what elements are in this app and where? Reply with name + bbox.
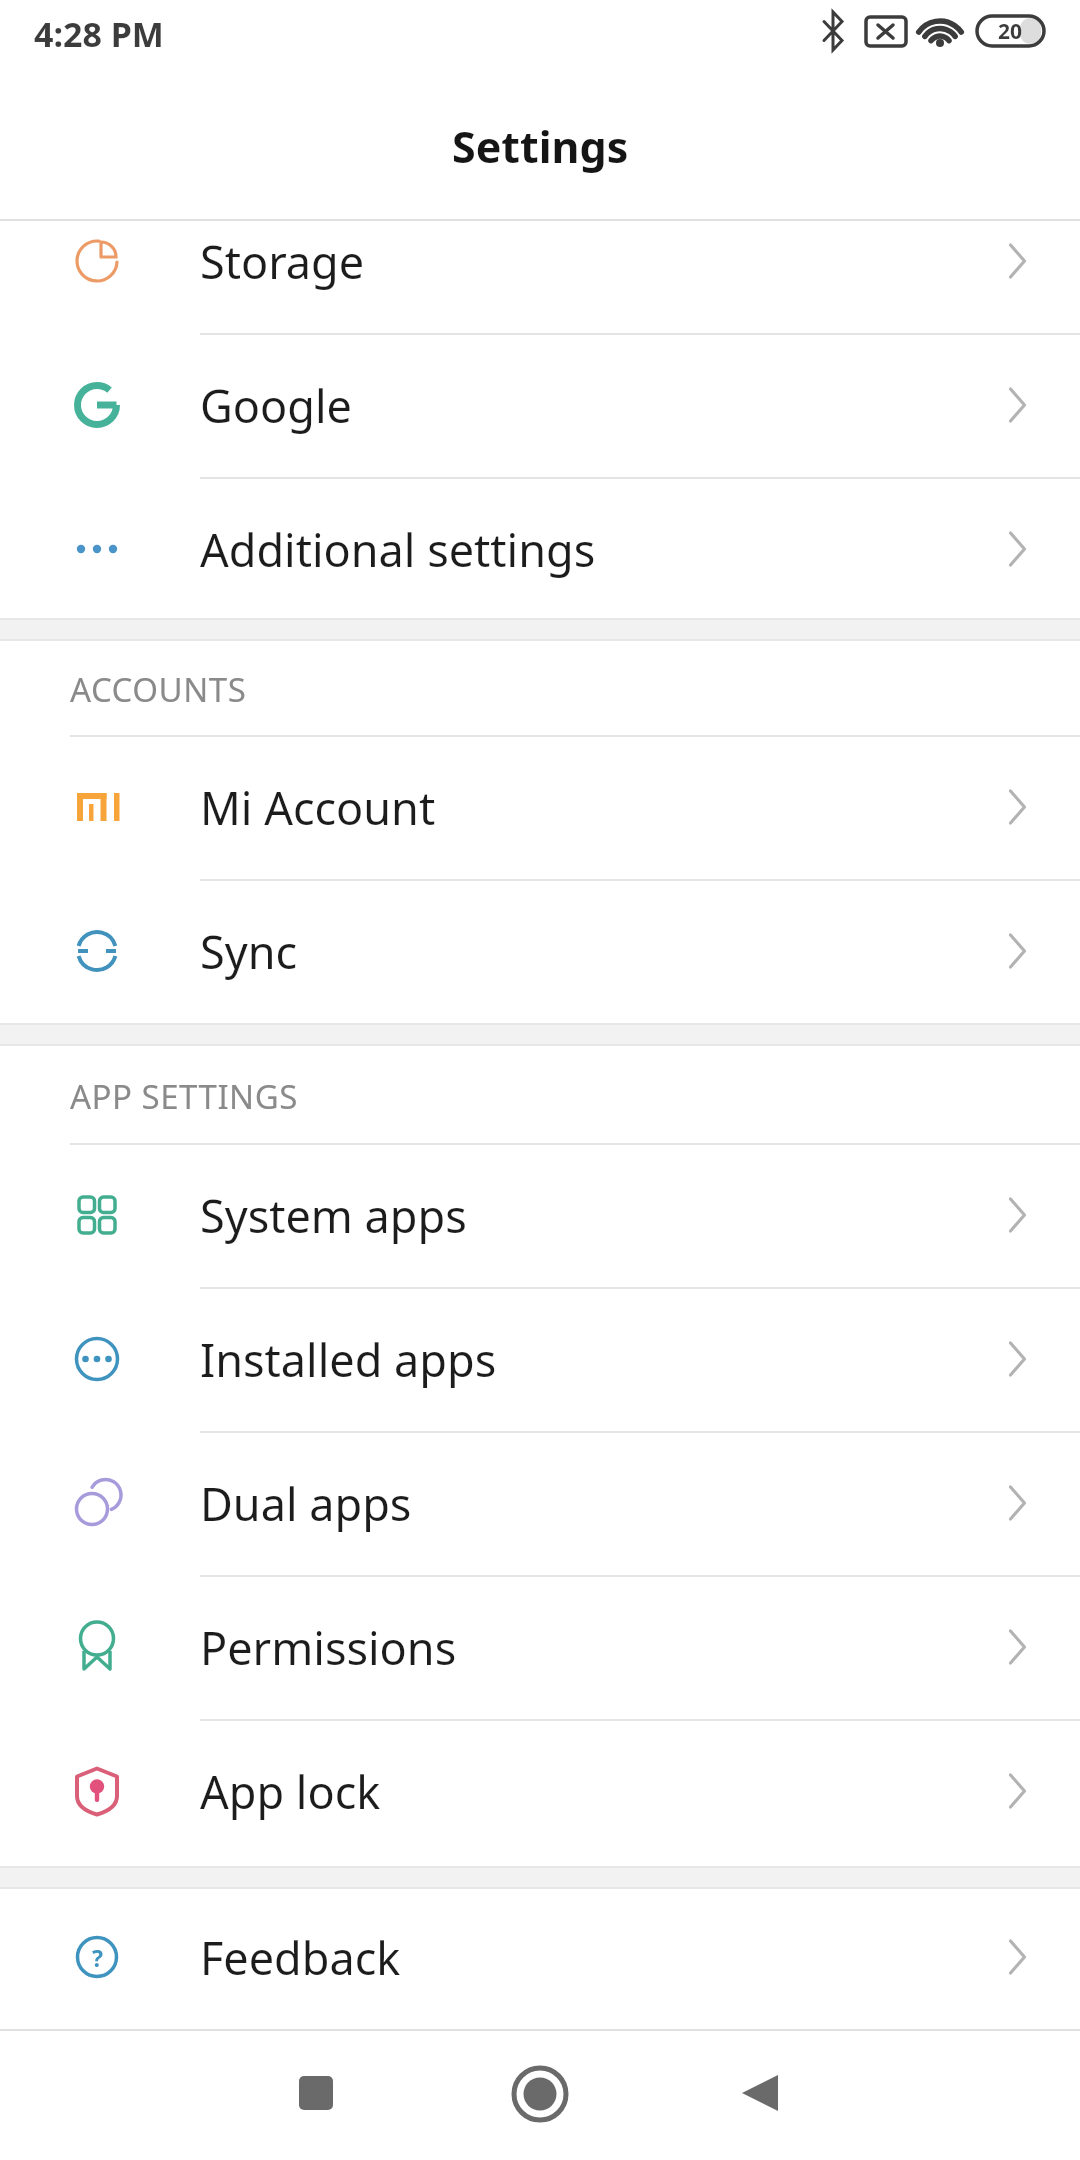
button[interactable]: Additional settings <box>0 477 1080 621</box>
button[interactable] <box>725 2058 795 2128</box>
staticText: ACCOUNTS <box>70 667 247 712</box>
button[interactable]: Google <box>0 333 1080 477</box>
staticText: Sync <box>200 921 298 982</box>
button[interactable]: System apps <box>0 1143 1080 1287</box>
staticText: APP SETTINGS <box>70 1074 298 1119</box>
staticText: 20 <box>998 17 1023 46</box>
staticText: Additional settings <box>200 519 596 580</box>
button[interactable]: Sync <box>0 879 1080 1023</box>
staticText: Google <box>200 375 352 436</box>
button[interactable] <box>505 2059 575 2129</box>
staticText: Permissions <box>200 1617 457 1678</box>
staticText: Mi Account <box>200 777 436 838</box>
button[interactable]: Mi Account <box>0 735 1080 879</box>
staticText: App lock <box>200 1761 381 1822</box>
button[interactable]: Permissions <box>0 1575 1080 1719</box>
staticText: Settings <box>452 117 629 176</box>
button[interactable]: Dual apps <box>0 1431 1080 1575</box>
button[interactable]: Installed apps <box>0 1287 1080 1431</box>
staticText: Feedback <box>200 1927 401 1988</box>
staticText: 4:28 PM <box>34 11 164 57</box>
button[interactable]: ? <box>0 1885 1080 2029</box>
staticText: System apps <box>200 1185 467 1246</box>
staticText: ? <box>92 1942 103 1973</box>
button[interactable]: App lock <box>0 1719 1080 1863</box>
staticText: Installed apps <box>200 1329 497 1390</box>
staticText: Storage <box>200 231 365 292</box>
button[interactable]: Storage <box>0 189 1080 333</box>
button[interactable] <box>281 2058 351 2128</box>
staticText: Dual apps <box>200 1473 412 1534</box>
